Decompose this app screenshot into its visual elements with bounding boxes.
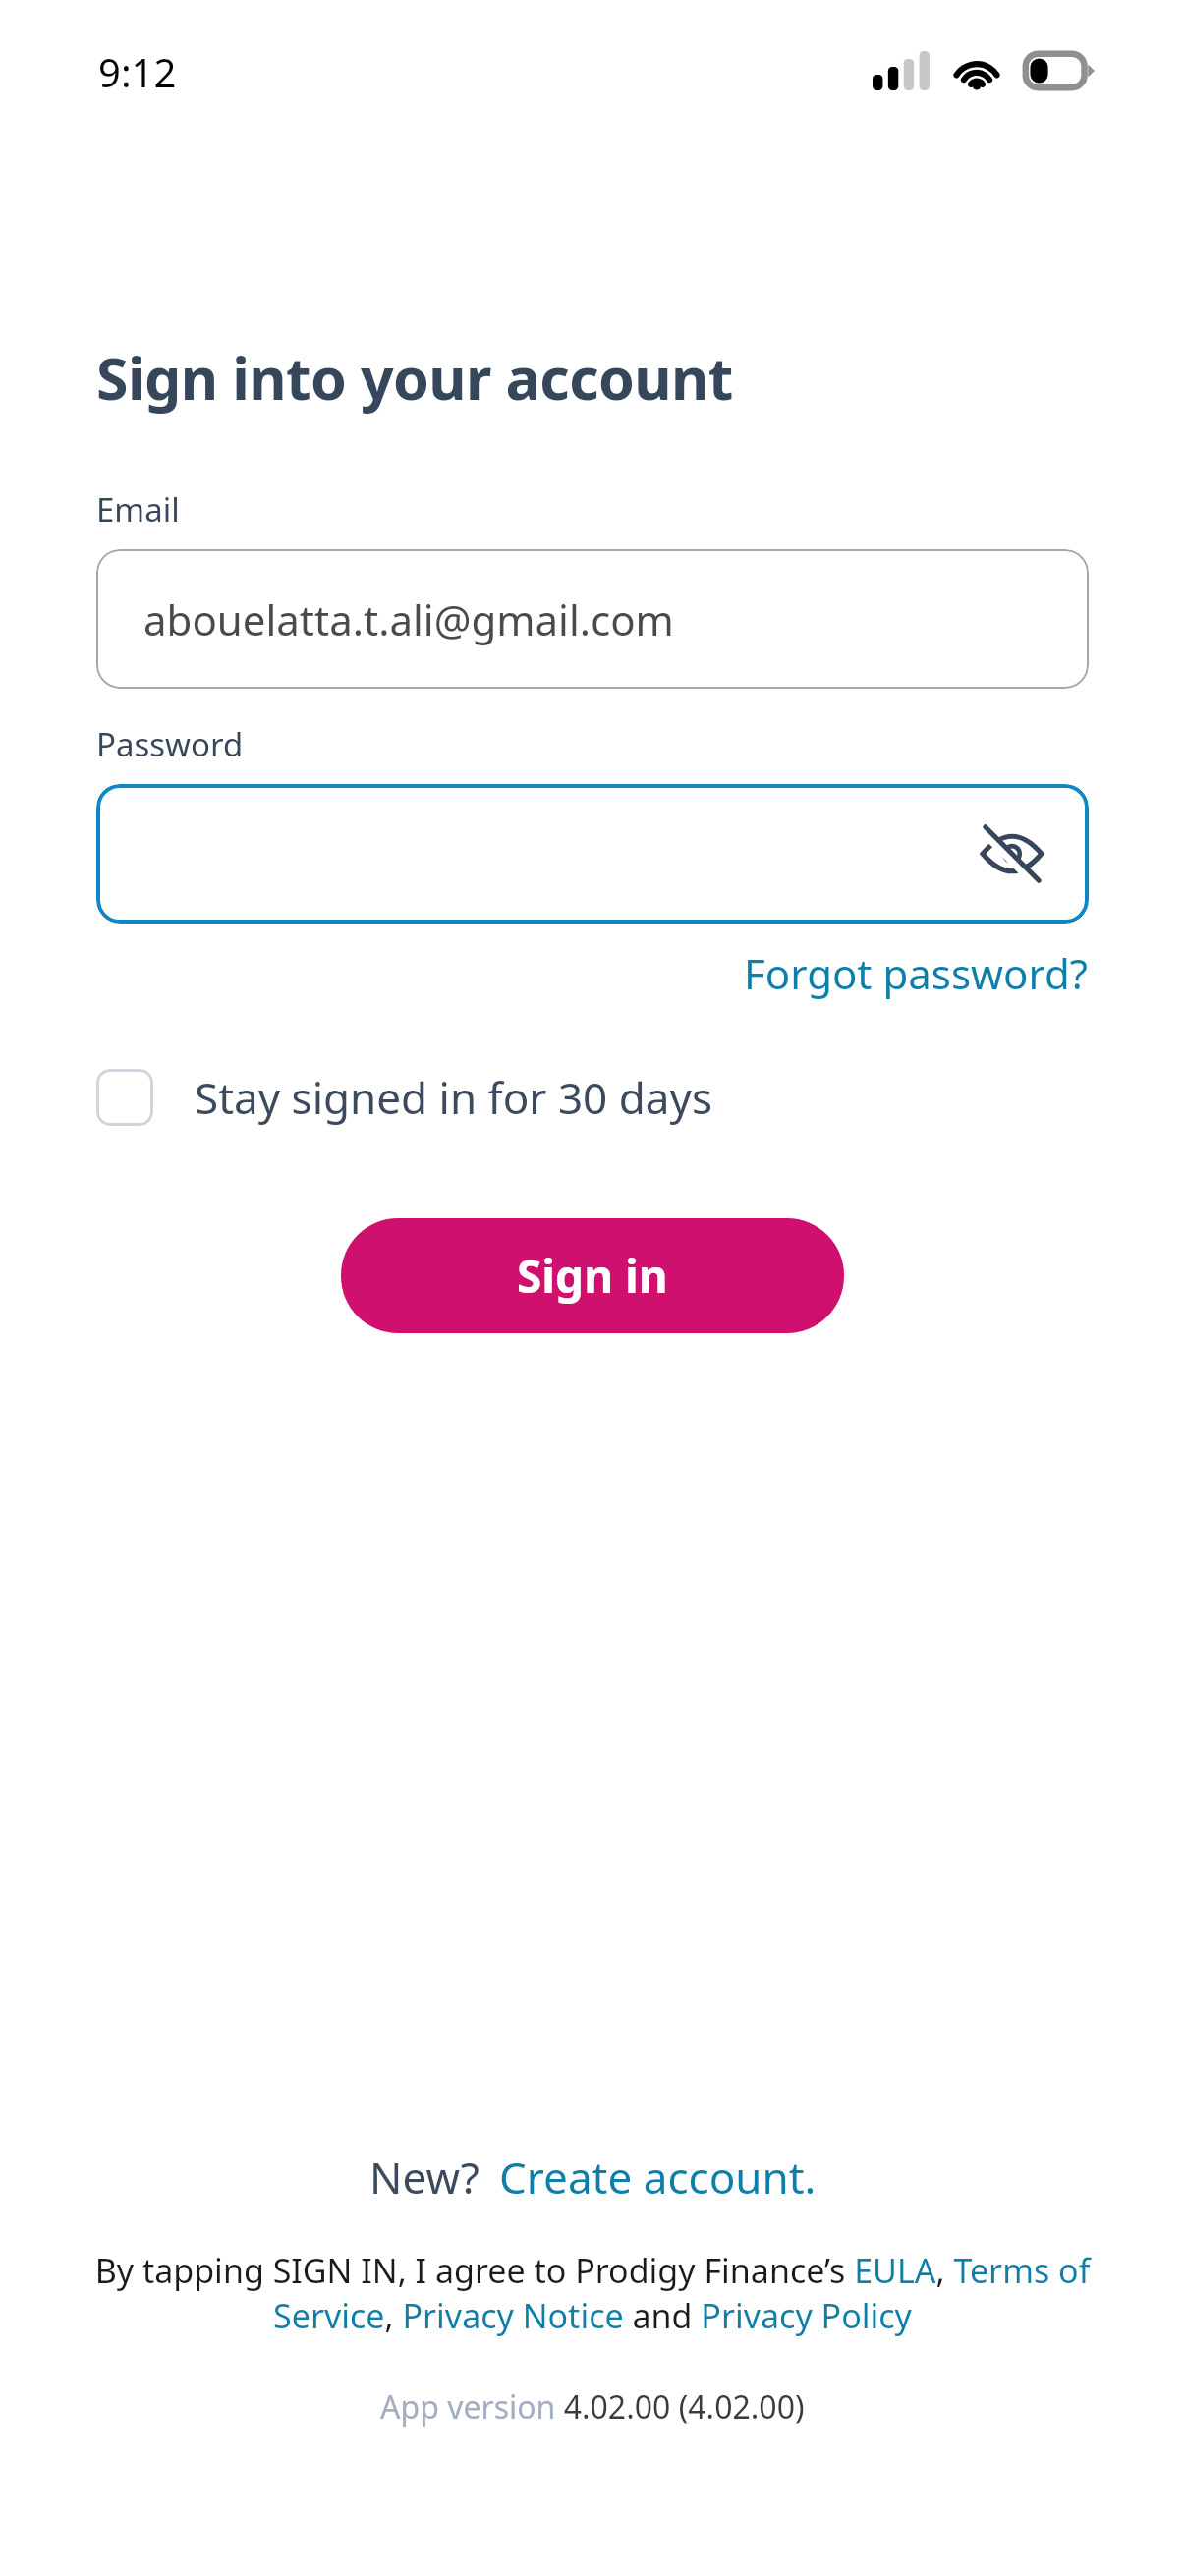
staticText: Sign into your account <box>96 338 733 417</box>
button[interactable]: Show password <box>973 814 1051 893</box>
staticText: By tapping SIGN IN, I agree to Prodigy F… <box>94 2248 1091 2338</box>
button[interactable]: Stay signed in for 30 days <box>96 1068 712 1127</box>
staticText: Email <box>96 487 180 532</box>
staticText: Sign in <box>517 1245 668 1307</box>
staticText: New? <box>369 2148 480 2207</box>
staticText: Stay signed in for 30 days <box>195 1068 712 1127</box>
button[interactable]: Forgot password? <box>744 945 1089 1001</box>
staticText: 9:12 <box>98 45 177 98</box>
button[interactable]: Show password <box>96 784 1089 924</box>
button[interactable]: Create account. <box>499 2148 817 2207</box>
button[interactable]: abouelatta.t.ali@gmail.com <box>96 549 1089 689</box>
staticText: App version 4.02.00 (4.02.00) <box>380 2385 805 2429</box>
staticText: Password <box>96 722 244 766</box>
button[interactable]: Sign in <box>341 1218 844 1333</box>
staticText: Forgot password? <box>744 945 1089 1001</box>
staticText: abouelatta.t.ali@gmail.com <box>143 591 674 647</box>
button[interactable]: By tapping SIGN IN, I agree to Prodigy F… <box>94 2248 1091 2338</box>
staticText: Create account. <box>499 2148 817 2207</box>
